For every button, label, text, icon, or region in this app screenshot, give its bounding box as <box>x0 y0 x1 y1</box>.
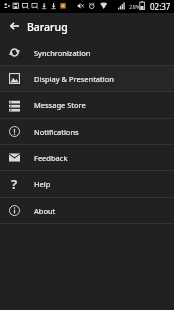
button[interactable]: ? <box>0 171 174 197</box>
button[interactable]: Synchronization <box>0 40 174 65</box>
button[interactable]: Feedback <box>0 145 174 170</box>
staticText: 02:37 <box>150 1 171 12</box>
staticText: About <box>34 206 56 216</box>
staticText: Synchronization <box>34 48 91 58</box>
button[interactable]: Display & Presentation <box>0 66 174 91</box>
staticText: ? <box>11 175 18 193</box>
staticText: Bararug <box>27 20 68 34</box>
staticText: Notifications <box>34 127 79 137</box>
staticText: Feedback <box>34 153 68 163</box>
button[interactable]: Message Store <box>0 92 174 118</box>
staticText: Display & Presentation <box>34 74 114 84</box>
button[interactable]: About <box>0 198 174 223</box>
button[interactable]: Navigate up <box>0 13 28 40</box>
staticText: Help <box>34 179 51 189</box>
staticText: Message Store <box>34 100 86 110</box>
button[interactable]: Notifications <box>0 119 174 144</box>
staticText: 28% <box>129 3 141 11</box>
